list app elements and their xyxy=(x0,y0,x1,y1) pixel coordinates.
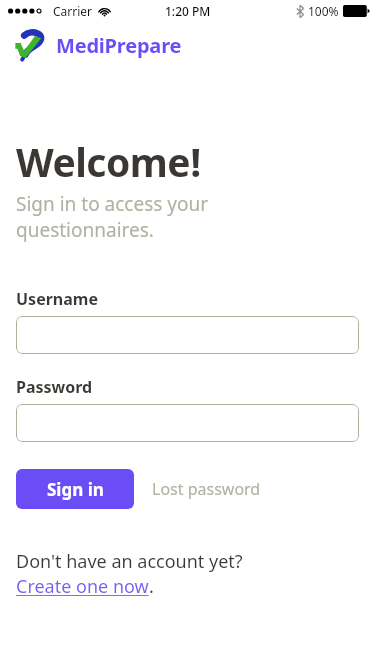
staticText: Username xyxy=(16,288,98,310)
staticText: Create one now xyxy=(16,574,149,599)
button[interactable]: Sign in xyxy=(16,469,134,509)
staticText: Password xyxy=(16,376,93,398)
staticText: Carrier xyxy=(53,3,93,19)
staticText: . xyxy=(149,574,154,599)
staticText: questionnaires. xyxy=(16,217,154,243)
button[interactable]: MediPrepare logo xyxy=(14,28,375,62)
button[interactable]: Create one now xyxy=(16,574,154,599)
button[interactable]: Lost password xyxy=(150,472,263,506)
button[interactable]: Username field xyxy=(16,316,359,354)
staticText: Sign in xyxy=(47,478,104,501)
staticText: Don't have an account yet? xyxy=(16,549,243,574)
staticText: Sign in to access your xyxy=(16,191,209,217)
other: MediPrepare logo xyxy=(14,28,48,62)
staticText: 1:20 PM xyxy=(165,3,211,19)
staticText: Welcome! xyxy=(16,135,201,188)
staticText: 100% xyxy=(308,3,339,19)
button[interactable]: Password field xyxy=(16,404,359,442)
staticText: MediPrepare xyxy=(56,32,182,59)
staticText: Lost password xyxy=(152,478,261,500)
